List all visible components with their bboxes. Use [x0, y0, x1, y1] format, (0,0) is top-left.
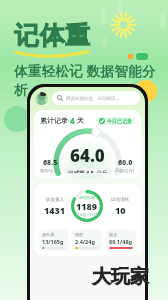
staticText: 碳水: [109, 232, 118, 237]
button[interactable]: 今日已记录: [96, 117, 135, 125]
staticText: 脂肪: [75, 232, 84, 237]
staticText: 搜索健康饮食、运动建议…: [66, 95, 120, 101]
staticText: 今日已记录: [107, 118, 132, 124]
staticText: 公斤: [95, 169, 108, 173]
button[interactable]: 脂肪: [72, 230, 102, 251]
staticText: 体重轻松记 数据智能分析: [14, 62, 168, 99]
staticText: 已减重: [68, 169, 86, 173]
staticText: 记体重: [14, 20, 91, 51]
staticText: 还可以吃: [79, 195, 95, 200]
button[interactable]: 饮食摄入: [34, 184, 141, 256]
staticText: 天: [75, 116, 84, 126]
staticText: 累计记录: [40, 116, 70, 126]
staticText: 68.5: [43, 158, 58, 168]
staticText: 目标(公斤): [115, 168, 135, 174]
staticText: 1431: [44, 204, 66, 216]
staticText: 13/165g: [42, 238, 64, 245]
staticText: 初始(公斤): [40, 168, 60, 174]
staticText: 4: [70, 115, 75, 126]
staticText: 10: [115, 204, 126, 216]
staticText: 89.1/48g: [109, 238, 133, 245]
staticText: 60.0: [118, 158, 133, 168]
button[interactable]: 碳水: [106, 230, 136, 251]
staticText: 1189: [76, 200, 98, 212]
staticText: 推荐摄入1972: [76, 212, 98, 217]
staticText: 4.5: [86, 169, 95, 173]
staticText: 64.0: [70, 144, 105, 167]
button[interactable]: 累计记录: [34, 110, 141, 179]
staticText: 大玩家: [92, 265, 149, 289]
staticText: 运动消耗: [111, 197, 129, 203]
button[interactable]: 搜索健康饮食、运动建议…: [52, 91, 140, 105]
button[interactable]: 蛋白质: [39, 230, 68, 251]
staticText: 蛋白质: [42, 232, 55, 237]
staticText: 2.4/24g: [75, 238, 95, 245]
staticText: 饮食摄入: [46, 197, 64, 203]
button[interactable]: Profile: [35, 92, 48, 105]
